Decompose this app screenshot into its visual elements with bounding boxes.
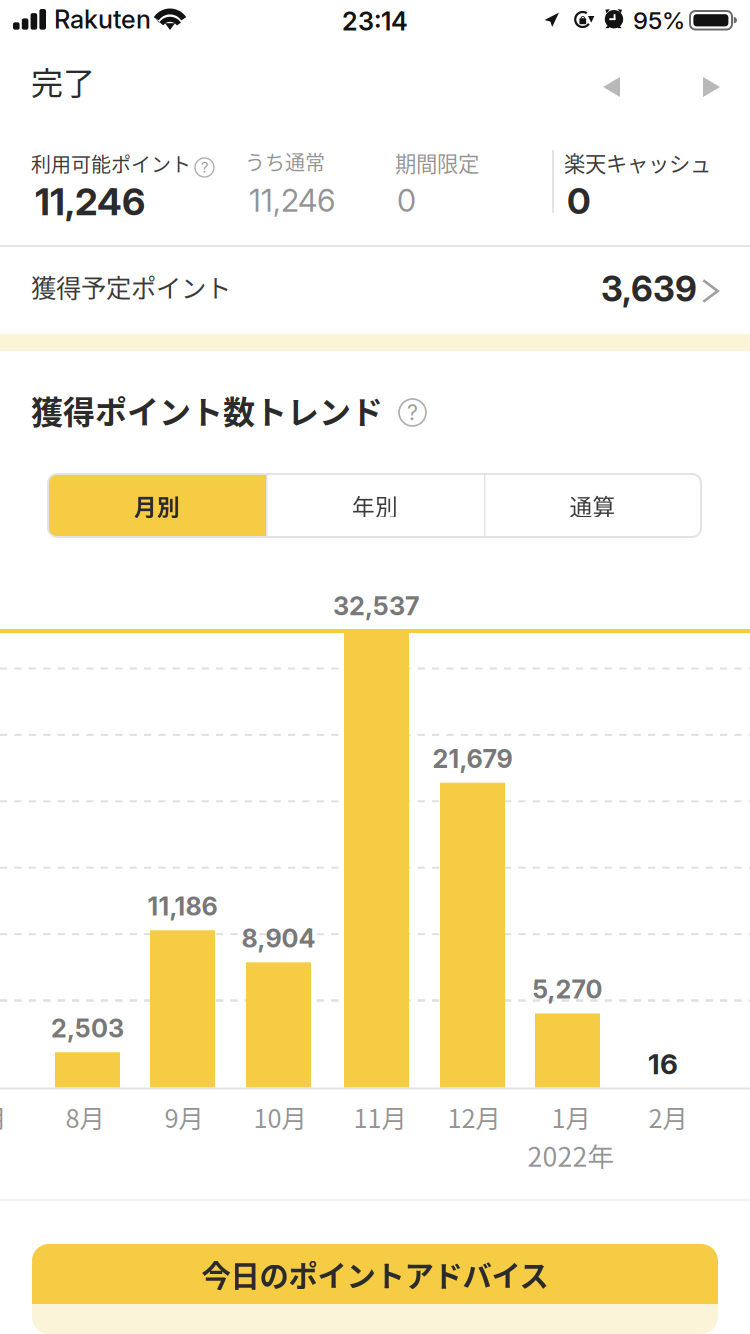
staticText: 2022年	[527, 1136, 614, 1174]
staticText: 完了	[31, 58, 95, 104]
button[interactable]: 年別	[266, 474, 484, 537]
staticText: 期間限定	[395, 147, 479, 178]
staticText: 95%	[633, 6, 685, 35]
staticText: 11月	[353, 1099, 406, 1135]
staticText: 楽天キャッシュ	[564, 147, 711, 178]
staticText: 32,537	[333, 591, 420, 621]
staticText: 3,639	[601, 268, 697, 310]
button[interactable]: Forward	[676, 44, 744, 132]
staticText: 23:14	[342, 6, 408, 37]
button[interactable]: 今日のポイントアドバイス	[32, 1244, 718, 1334]
staticText: ?	[201, 159, 208, 176]
staticText: 0	[397, 182, 416, 219]
staticText: 9月	[164, 1099, 203, 1135]
staticText: 10月	[253, 1099, 306, 1135]
staticText: 21,679	[432, 743, 512, 774]
staticText: 月	[0, 1099, 6, 1135]
button[interactable]: 月別	[48, 474, 266, 537]
staticText: 通算	[569, 489, 615, 522]
staticText: うち通常	[245, 147, 325, 176]
button[interactable]: 通算	[484, 474, 701, 537]
staticText: 今日のポイントアドバイス	[201, 1253, 548, 1295]
staticText: 11,246	[35, 179, 145, 224]
button[interactable]: 完了	[0, 44, 154, 132]
staticText: 16	[648, 1047, 678, 1081]
staticText: 月別	[134, 489, 180, 522]
staticText: 2月	[648, 1099, 687, 1135]
staticText: 12月	[447, 1099, 500, 1135]
staticText: 獲得ポイント数トレンド	[31, 387, 383, 433]
staticText: 8,904	[241, 923, 315, 954]
staticText: 11,246	[249, 182, 335, 219]
button[interactable]: 獲得予定ポイント	[0, 246, 750, 334]
staticText: 利用可能ポイント	[31, 149, 191, 178]
staticText: 2,503	[51, 1013, 124, 1044]
button[interactable]: Back	[578, 44, 646, 132]
staticText: 11,186	[147, 891, 217, 922]
staticText: Rakuten	[54, 4, 151, 35]
staticText: 獲得予定ポイント	[31, 268, 231, 305]
staticText: 1月	[551, 1099, 590, 1135]
staticText: 8月	[65, 1099, 104, 1135]
staticText: ?	[407, 400, 418, 425]
staticText: 0	[567, 179, 591, 223]
staticText: 5,270	[532, 974, 602, 1005]
staticText: 年別	[352, 489, 398, 522]
